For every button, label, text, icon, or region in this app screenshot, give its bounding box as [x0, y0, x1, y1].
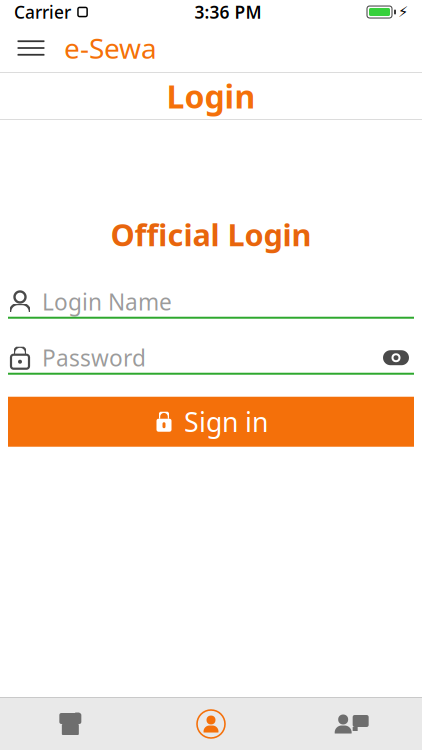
staticText: ⚡︎ [398, 4, 408, 20]
button[interactable]: Messages [281, 699, 422, 749]
button[interactable]: e-Sewa [58, 26, 163, 70]
staticText: Sign in [184, 404, 268, 439]
staticText: 3:36 PM [194, 0, 261, 23]
staticText: Login Name [42, 287, 172, 317]
button[interactable]: Show password [378, 348, 414, 368]
button[interactable]: Profile [141, 699, 281, 749]
staticText: Official Login [110, 214, 311, 255]
staticText: Password [42, 343, 146, 373]
button[interactable]: Sign in [8, 397, 414, 447]
button[interactable]: Home [0, 699, 141, 749]
staticText: Carrier [14, 0, 71, 23]
staticText: e-Sewa [64, 29, 157, 67]
button[interactable]: Menu [4, 26, 58, 70]
staticText: Login [166, 75, 255, 117]
